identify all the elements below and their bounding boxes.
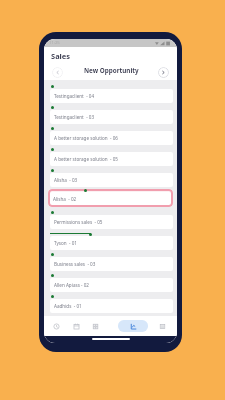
button[interactable]: Aadhids - 01 bbox=[44, 293, 177, 314]
staticText: Allen Apiass - 02 bbox=[54, 282, 89, 288]
button[interactable]: Alisha - 03 bbox=[44, 167, 177, 188]
button[interactable]: A better storage solution - 05 bbox=[44, 146, 177, 167]
staticText: Alisha - 03 bbox=[54, 177, 78, 183]
staticText: Testingaclient - 04 bbox=[54, 93, 95, 99]
staticText: A better storage solution - 06 bbox=[54, 135, 118, 141]
staticText: Tyson - 01 bbox=[54, 240, 77, 246]
staticText: Business sales - 03 bbox=[54, 261, 96, 267]
button[interactable]: Permissions sales - 05 bbox=[44, 209, 177, 230]
staticText: A better storage solution - 05 bbox=[54, 156, 118, 162]
button[interactable]: Allen Apiass - 02 bbox=[44, 272, 177, 293]
button[interactable]: Business sales - 03 bbox=[44, 251, 177, 272]
button[interactable]: List bbox=[155, 320, 169, 332]
button[interactable]: Previous bbox=[52, 67, 63, 78]
button[interactable]: A better storage solution - 06 bbox=[44, 125, 177, 146]
button[interactable]: Apps bbox=[88, 320, 102, 332]
staticText: New Opportunity bbox=[84, 66, 139, 75]
button[interactable]: Analytics bbox=[118, 320, 148, 332]
staticText: 11:25 bbox=[49, 40, 60, 46]
button[interactable]: Alisha - 02 bbox=[44, 188, 177, 209]
button[interactable]: Calendar bbox=[69, 320, 83, 332]
staticText: Permissions sales - 05 bbox=[54, 219, 103, 225]
button[interactable]: Testingaclient - 03 bbox=[44, 104, 177, 125]
staticText: Sales bbox=[51, 51, 71, 61]
staticText: Alisha - 02 bbox=[53, 196, 77, 202]
button[interactable]: Tyson - 01 bbox=[44, 230, 177, 251]
button[interactable]: Next bbox=[158, 67, 169, 78]
button[interactable]: Testingaclient - 04 bbox=[44, 83, 177, 104]
staticText: Aadhids - 01 bbox=[54, 303, 82, 309]
button[interactable]: History bbox=[49, 320, 63, 332]
staticText: Testingaclient - 03 bbox=[54, 114, 95, 120]
